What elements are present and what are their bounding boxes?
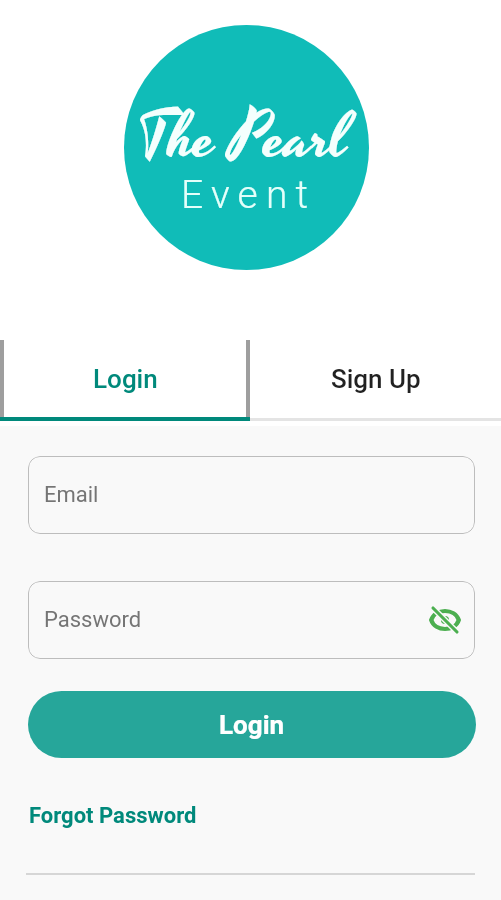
button[interactable]: Password xyxy=(28,581,475,659)
button[interactable]: Show password xyxy=(425,600,465,640)
staticText: Event xyxy=(181,172,317,218)
button[interactable]: Sign Up xyxy=(250,337,501,421)
staticText: Sign Up xyxy=(331,364,421,394)
staticText: Forgot Password xyxy=(29,803,197,829)
staticText: Login xyxy=(93,364,158,394)
staticText: Password xyxy=(44,607,142,633)
staticText: Email xyxy=(44,482,99,508)
button[interactable]: Email xyxy=(28,456,475,534)
staticText: Login xyxy=(219,710,285,740)
button[interactable]: Login xyxy=(28,691,476,758)
button[interactable]: Login xyxy=(0,337,250,421)
staticText: The Pearl xyxy=(137,93,349,185)
button[interactable]: Forgot Password xyxy=(29,803,197,829)
